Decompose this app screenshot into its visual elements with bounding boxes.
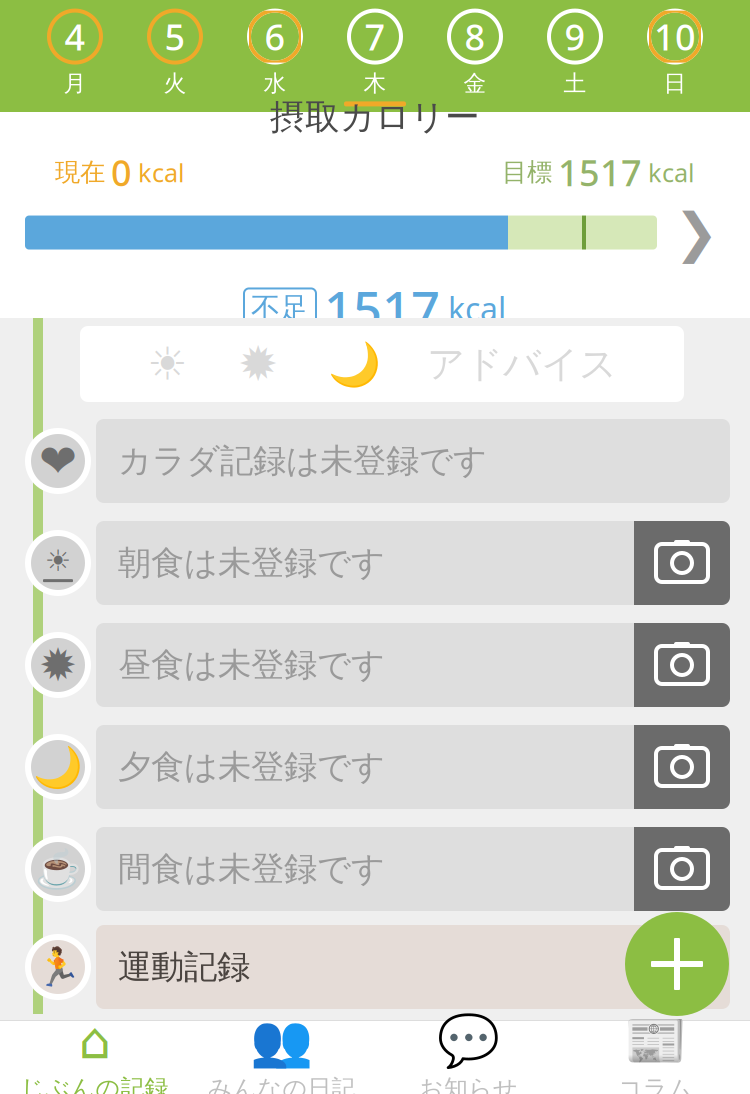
staticText: 不足 [251,290,309,326]
staticText: ☀ [45,544,71,577]
staticText: 🌙 [33,744,83,790]
button[interactable]: 摂取カロリー [0,112,750,318]
staticText: 5 [164,13,185,60]
staticText: お知らせ [419,1074,518,1094]
staticText: 金 [463,70,486,97]
staticText: 4 [64,13,85,60]
staticText: 月 [63,70,86,97]
staticText: アドバイス [427,341,617,387]
button[interactable]: 運動記録 [96,925,730,1009]
staticText: ✹ [39,639,77,691]
button[interactable]: 夕食は未登録です [96,725,730,809]
button[interactable]: 7 [325,6,425,106]
button[interactable]: カラダ記録は未登録です [20,427,96,495]
button[interactable]: 6 [225,6,325,106]
staticText: 9 [564,13,585,60]
staticText: kcal [648,156,695,189]
button[interactable]: 📰 [562,1020,749,1094]
staticText: 摂取カロリー [270,96,480,138]
button[interactable]: カラダ記録は未登録です [96,419,730,503]
staticText: 1517 [324,275,440,342]
button[interactable]: 間食は未登録です [96,827,730,911]
staticText: ⌂ [78,1012,110,1069]
button[interactable]: 5 [125,6,225,106]
staticText: 間食は未登録です [118,848,385,889]
staticText: 🏃 [35,946,81,988]
button[interactable]: 8 [425,6,525,106]
button[interactable]: 朝食は未登録です [20,529,96,597]
staticText: kcal [138,156,185,189]
button[interactable]: 4 [25,6,125,106]
staticText: 水 [263,70,286,97]
staticText: 運動記録 [118,946,250,987]
staticText: カラダ記録は未登録です [118,440,487,481]
button[interactable]: 9 [525,6,625,106]
staticText: ☀ [147,338,188,390]
staticText: 現在 [55,157,105,188]
staticText: 8 [464,13,485,60]
staticText: コラム [618,1074,693,1094]
button[interactable]: 昼食は未登録です [20,631,96,699]
staticText: 0 [111,148,132,196]
button[interactable]: ⌂ [1,1020,188,1094]
staticText: 1517 [558,148,642,196]
button[interactable]: 運動記録 [20,933,96,1001]
button[interactable]: 朝食は未登録です [96,521,730,605]
staticText: ☕ [35,848,81,890]
staticText: 6 [264,13,285,60]
button[interactable]: ☀ [80,326,684,402]
staticText: 💬 [437,1012,500,1070]
staticText: ❯ [674,202,719,263]
staticText: 7 [364,13,385,60]
staticText: 👥 [250,1012,313,1070]
button[interactable]: 10 [625,6,725,106]
button[interactable]: 昼食は未登録です [96,623,730,707]
staticText: 10 [654,13,696,60]
staticText: 📰 [624,1012,687,1070]
staticText: 土 [563,70,586,97]
button[interactable]: 追加 [622,909,732,1019]
staticText: 夕食は未登録です [118,746,385,787]
staticText: ✹ [238,337,278,391]
staticText: 朝食は未登録です [118,542,385,583]
button[interactable]: 夕食は未登録です [20,733,96,801]
staticText: kcal [448,287,506,330]
staticText: 日 [663,70,686,97]
staticText: じぶんの記録 [20,1073,168,1094]
staticText: 火 [163,70,186,97]
button[interactable]: 👥 [188,1020,375,1094]
staticText: 木 [363,70,386,97]
staticText: 昼食は未登録です [118,644,385,685]
staticText: ❤ [39,435,77,487]
button[interactable]: 間食は未登録です [20,835,96,903]
button[interactable]: 💬 [375,1020,562,1094]
staticText: 🌙 [328,340,381,388]
staticText: みんなの日記 [207,1074,355,1094]
staticText: 目標 [502,157,552,188]
